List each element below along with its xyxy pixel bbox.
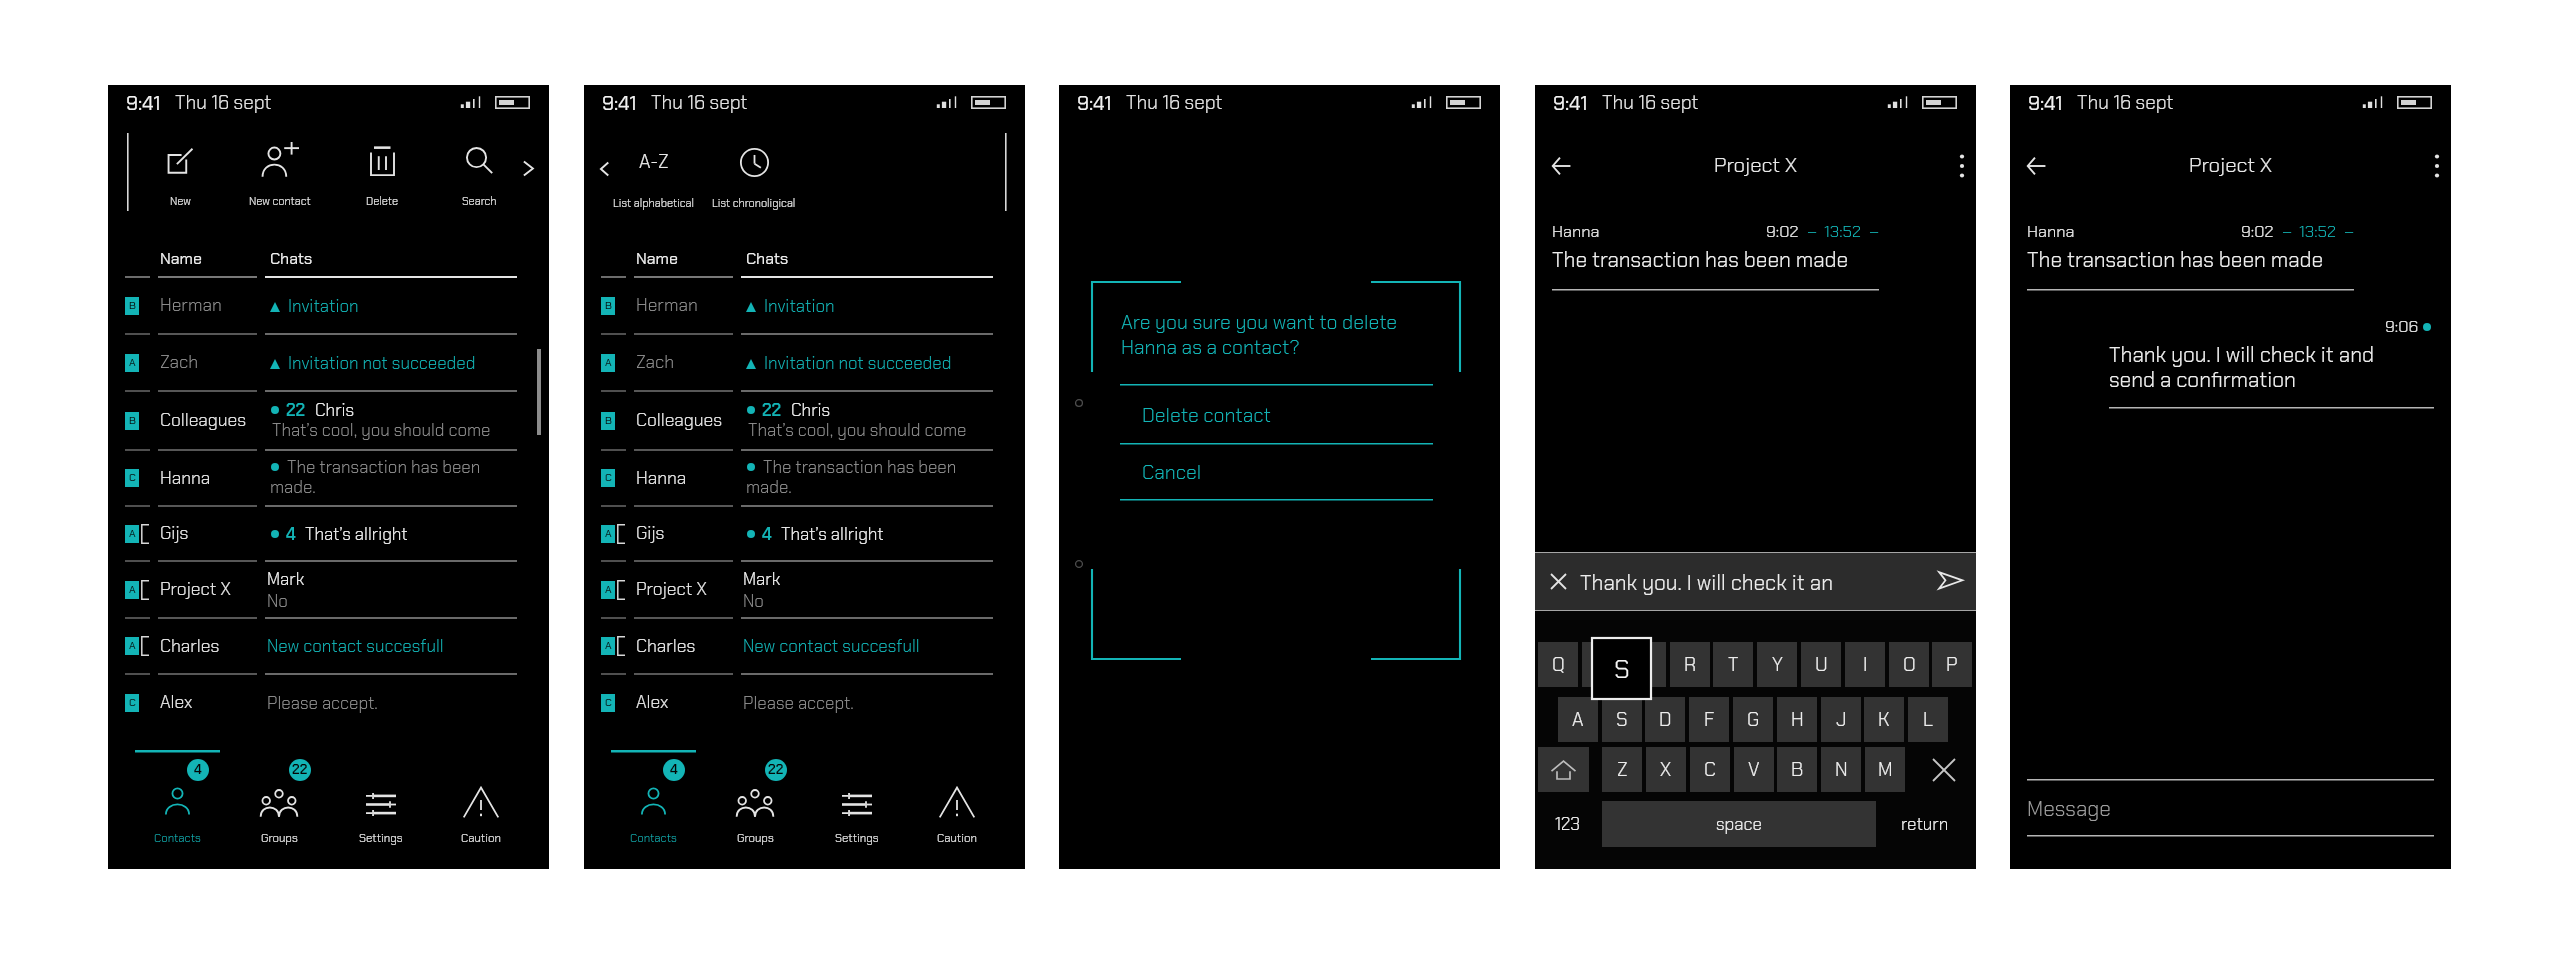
button[interactable]: Q <box>1538 642 1578 687</box>
button[interactable]: A <box>584 506 1025 561</box>
button[interactable]: C <box>1690 747 1730 792</box>
button[interactable]: List chronoligical <box>706 131 802 217</box>
button[interactable]: A <box>108 561 549 618</box>
button[interactable]: Groups <box>230 755 328 853</box>
button[interactable]: Back <box>2027 157 2046 175</box>
button[interactable]: A <box>584 618 1025 674</box>
staticText: C <box>129 696 136 710</box>
button[interactable]: L <box>1908 697 1948 742</box>
button[interactable]: C <box>584 674 1025 731</box>
button[interactable]: Search <box>431 131 527 217</box>
button[interactable]: Back <box>600 162 609 176</box>
button[interactable]: New <box>132 131 228 217</box>
button[interactable]: V <box>1734 747 1774 792</box>
button[interactable]: M <box>1865 747 1905 792</box>
button[interactable]: N <box>1821 747 1861 792</box>
button[interactable]: J <box>1821 697 1861 742</box>
button[interactable]: New contact <box>232 131 328 217</box>
button[interactable]: Shift <box>1538 747 1589 792</box>
button[interactable]: A <box>1558 697 1598 742</box>
button[interactable]: 123 <box>1539 801 1595 847</box>
button[interactable]: I <box>1845 642 1885 687</box>
button[interactable]: Caution <box>432 755 530 853</box>
staticText: 9:06 <box>2385 316 2419 337</box>
button[interactable]: S <box>1602 697 1642 742</box>
button[interactable]: H <box>1777 697 1817 742</box>
button[interactable]: Backspace <box>1923 747 1964 792</box>
button[interactable]: Back <box>1552 157 1571 175</box>
button[interactable]: C <box>584 450 1025 506</box>
button[interactable]: B <box>584 277 1025 334</box>
button[interactable]: Z <box>1602 747 1642 792</box>
button[interactable]: E <box>1626 642 1666 687</box>
button[interactable]: B <box>108 277 549 334</box>
staticText: L <box>1923 707 1934 732</box>
button[interactable]: Send <box>1938 571 1963 589</box>
staticText: Message <box>2027 795 2111 822</box>
staticText: C <box>129 471 136 485</box>
staticText: 9:41 <box>602 90 637 116</box>
staticText: Contacts <box>154 831 201 846</box>
button[interactable]: Settings <box>808 755 906 853</box>
staticText: V <box>1748 757 1760 782</box>
button[interactable]: A <box>584 334 1025 391</box>
button[interactable]: R <box>1670 642 1710 687</box>
staticText: List chronoligical <box>712 196 796 210</box>
button[interactable]: More options <box>2431 154 2443 178</box>
staticText: made. <box>270 476 316 498</box>
staticText: 22 <box>768 761 784 779</box>
button[interactable]: Caution <box>908 755 1006 853</box>
staticText: New contact succesfull <box>267 635 444 657</box>
staticText: Invitation not succeeded <box>764 352 952 374</box>
staticText: Colleagues <box>160 409 247 432</box>
button[interactable]: Delete <box>334 131 430 217</box>
button[interactable]: Cancel <box>1120 445 1433 500</box>
button[interactable]: F <box>1689 697 1729 742</box>
button[interactable]: B <box>584 391 1025 450</box>
button[interactable]: Clear text <box>1551 574 1566 589</box>
button[interactable] <box>1582 642 1622 687</box>
staticText: space <box>1716 813 1762 835</box>
button[interactable]: A <box>108 506 549 561</box>
staticText: Alex <box>636 691 669 714</box>
staticText: C <box>605 471 612 485</box>
staticText: U <box>1815 652 1828 677</box>
button[interactable]: K <box>1864 697 1904 742</box>
button[interactable]: return <box>1881 801 1968 847</box>
button[interactable]: More actions <box>523 161 534 176</box>
button[interactable]: More options <box>1956 154 1968 178</box>
staticText: Hanna <box>2027 221 2075 242</box>
button[interactable]: space <box>1602 801 1876 847</box>
button[interactable]: A <box>108 334 549 391</box>
staticText: Hanna <box>636 467 687 490</box>
button[interactable]: P <box>1932 642 1972 687</box>
button[interactable]: Groups <box>706 755 804 853</box>
button[interactable]: O <box>1889 642 1929 687</box>
button[interactable]: Contacts <box>604 755 702 853</box>
button[interactable]: Y <box>1757 642 1797 687</box>
staticText: Invitation <box>288 295 359 317</box>
button[interactable]: B <box>108 391 549 450</box>
button[interactable]: A-Z <box>606 131 702 217</box>
button[interactable]: A <box>108 618 549 674</box>
staticText: Thu 16 sept <box>1602 90 1699 115</box>
staticText: That’s cool, you should come <box>272 419 491 441</box>
button[interactable]: B <box>1777 747 1817 792</box>
button[interactable]: D <box>1645 697 1685 742</box>
button[interactable]: X <box>1646 747 1686 792</box>
button[interactable]: U <box>1801 642 1841 687</box>
staticText: Mark <box>267 568 305 590</box>
button[interactable]: G <box>1733 697 1773 742</box>
button[interactable]: Message <box>2027 781 2434 836</box>
staticText: R <box>1684 652 1697 677</box>
button[interactable]: A <box>584 561 1025 618</box>
staticText: Settings <box>835 831 879 846</box>
staticText: E <box>1641 652 1652 677</box>
button[interactable]: C <box>108 450 549 506</box>
button[interactable]: Settings <box>332 755 430 853</box>
staticText: List alphabetical <box>613 196 695 210</box>
button[interactable]: Delete contact <box>1120 386 1433 444</box>
button[interactable]: C <box>108 674 549 731</box>
button[interactable]: Contacts <box>128 755 226 853</box>
button[interactable]: T <box>1713 642 1753 687</box>
